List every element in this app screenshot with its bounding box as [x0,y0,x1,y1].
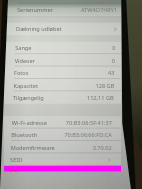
button[interactable]: Modemfirmware [2,141,119,153]
staticText: Fotos [14,69,29,77]
staticText: ATW4O7HRY1 [81,6,118,14]
button[interactable]: Serienummer [8,4,125,16]
staticText: 112,11 GB [87,94,114,102]
staticText: Sange [15,45,32,52]
button[interactable]: EID [0,166,117,171]
button[interactable]: Wi-Fi-adresse [3,116,120,129]
staticText: Wi-Fi-adresse [12,119,48,127]
other: Open Dækning udløbet [114,26,117,32]
staticText: Videoer [15,57,36,65]
other: Open SEID [108,157,111,163]
staticText: 43 [108,69,115,77]
button[interactable]: Dækning udløbet [7,23,124,35]
staticText: Modemfirmware [11,144,56,151]
staticText: 0 [112,57,116,65]
button[interactable]: Fotos [5,67,122,79]
button[interactable]: Videoer [6,54,123,67]
staticText: EID [9,169,19,172]
button[interactable]: Bluetooth [2,129,119,141]
staticText: 3.70.02 [93,144,112,151]
staticText: 70:B3:06:5F:41:37 [66,119,113,127]
button[interactable]: Kapacitet [4,79,121,91]
staticText: Serienummer [17,6,53,14]
staticText: 0 [112,45,116,52]
button[interactable]: Modelnummer [8,0,125,4]
staticText: 70:B3:06:66:FD:CA [64,131,112,139]
staticText: Bluetooth [11,131,37,139]
staticText: 128 GB [95,82,114,89]
button[interactable]: Tilgængelig [4,91,121,104]
staticText: SEID [10,156,23,164]
button[interactable]: SEID [1,153,118,166]
staticText: Kapacitet [13,82,38,89]
button[interactable]: Sange [6,42,123,54]
staticText: Dækning udløbet [16,25,62,33]
staticText: Tilgængelig [13,94,44,102]
